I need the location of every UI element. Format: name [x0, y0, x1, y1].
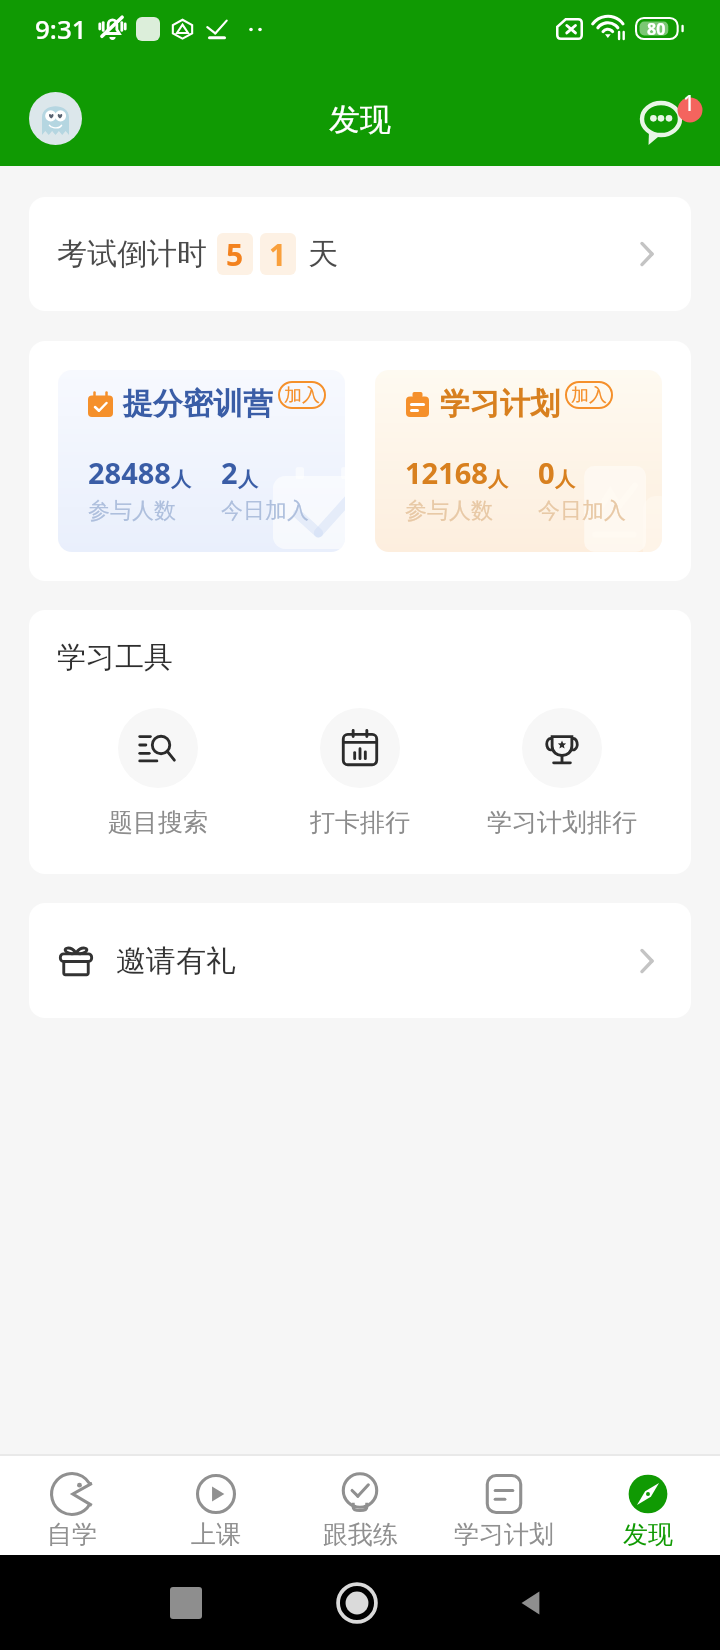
staticText: 人 — [238, 467, 258, 492]
button[interactable]: 自学 — [0, 1456, 144, 1555]
staticText: 学习计划 — [440, 385, 560, 423]
button[interactable]: Profile — [29, 92, 82, 145]
staticText: 1 — [269, 234, 287, 275]
button[interactable]: 提分密训营 — [58, 370, 345, 552]
button[interactable]: 上课 — [144, 1456, 288, 1555]
staticText: 天 — [308, 235, 338, 273]
staticText: 加入 — [571, 384, 607, 407]
button[interactable]: 邀请有礼 — [29, 903, 691, 1018]
button[interactable]: 学习计划排行 — [461, 708, 663, 838]
staticText: 邀请有礼 — [116, 942, 236, 980]
button[interactable]: 跟我练 — [288, 1456, 432, 1555]
staticText: 1 — [683, 89, 696, 118]
staticText: 28488 — [88, 453, 171, 492]
staticText: 人 — [171, 467, 191, 492]
staticText: 人 — [555, 467, 575, 492]
button[interactable]: 学习计划 — [375, 370, 662, 552]
staticText: 跟我练 — [323, 1519, 398, 1550]
button[interactable]: 学习计划 — [432, 1456, 576, 1555]
staticText: 5 — [226, 234, 244, 275]
button[interactable]: Messages — [637, 87, 705, 149]
button[interactable]: 发现 — [576, 1456, 720, 1555]
staticText: 80 — [647, 18, 666, 40]
staticText: 提分密训营 — [123, 385, 273, 423]
staticText: 2 — [221, 453, 238, 492]
staticText: 加入 — [284, 384, 320, 407]
staticText: 今日加入 — [221, 497, 309, 525]
staticText: 参与人数 — [88, 497, 176, 525]
staticText: 9:31 — [35, 11, 87, 46]
staticText: 上课 — [191, 1519, 241, 1550]
staticText: 发现 — [623, 1519, 673, 1550]
staticText: 学习计划 — [454, 1519, 554, 1550]
staticText: 考试倒计时 — [57, 235, 207, 273]
button[interactable]: 考试倒计时 — [29, 197, 691, 311]
staticText: 打卡排行 — [310, 807, 410, 838]
staticText: 人 — [488, 467, 508, 492]
staticText: 题目搜索 — [108, 807, 208, 838]
staticText: 发现 — [329, 100, 391, 139]
button[interactable]: 打卡排行 — [259, 708, 461, 838]
staticText: 学习工具 — [57, 639, 173, 676]
staticText: 0 — [538, 453, 555, 492]
staticText: 自学 — [47, 1519, 97, 1550]
staticText: 学习计划排行 — [487, 807, 637, 838]
button[interactable]: 题目搜索 — [57, 708, 259, 838]
staticText: 参与人数 — [405, 497, 493, 525]
staticText: 今日加入 — [538, 497, 626, 525]
staticText: 12168 — [405, 453, 488, 492]
